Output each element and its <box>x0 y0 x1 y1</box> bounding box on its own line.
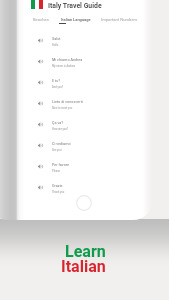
button[interactable]: Play pronunciation <box>38 72 142 93</box>
staticText: Thank you <box>52 190 65 193</box>
other: Play pronunciation <box>38 143 43 148</box>
staticText: E tu? <box>52 79 61 83</box>
staticText: Italian <box>61 257 106 276</box>
button[interactable]: Play pronunciation <box>38 135 142 156</box>
button[interactable]: Play pronunciation <box>38 156 142 177</box>
other: Play pronunciation <box>38 38 43 43</box>
button[interactable]: Play pronunciation <box>38 30 142 51</box>
staticText: Hello <box>52 43 59 46</box>
button[interactable]: Italian Language <box>61 17 91 22</box>
button[interactable]: Beaches <box>33 17 49 22</box>
staticText: Italy Travel Guide <box>48 2 102 10</box>
other: Play pronunciation <box>38 80 43 85</box>
staticText: Grazie <box>52 184 63 188</box>
staticText: Please <box>52 169 61 172</box>
other: Play pronunciation <box>38 101 43 106</box>
staticText: See you <box>52 148 62 151</box>
staticText: Mi chiamo Andrea <box>52 58 83 62</box>
staticText: Salut <box>52 37 61 41</box>
staticText: Italian Language <box>61 17 91 22</box>
other: Play pronunciation <box>38 164 43 169</box>
button[interactable]: Important Numbers <box>101 17 138 22</box>
other: Play pronunciation <box>38 185 43 190</box>
staticText: Ci vediamo <box>52 142 71 146</box>
button[interactable]: Play pronunciation <box>38 114 142 135</box>
other: Play pronunciation <box>38 59 43 64</box>
button[interactable]: Play pronunciation <box>38 177 142 198</box>
staticText: Learn <box>65 242 106 261</box>
staticText: My name is Andrea <box>52 64 75 67</box>
staticText: Important Numbers <box>101 17 138 22</box>
staticText: And you? <box>52 85 63 88</box>
button[interactable]: Play pronunciation <box>38 93 142 114</box>
staticText: Ça va? <box>52 121 64 125</box>
staticText: How are you? <box>52 127 69 130</box>
staticText: Nice to meet you <box>52 106 73 109</box>
staticText: Lieto di conoscerti <box>52 100 83 104</box>
staticText: Beaches <box>33 17 49 22</box>
other: Play pronunciation <box>38 122 43 127</box>
staticText: Per favore <box>52 163 69 167</box>
button[interactable]: Play pronunciation <box>38 51 142 72</box>
